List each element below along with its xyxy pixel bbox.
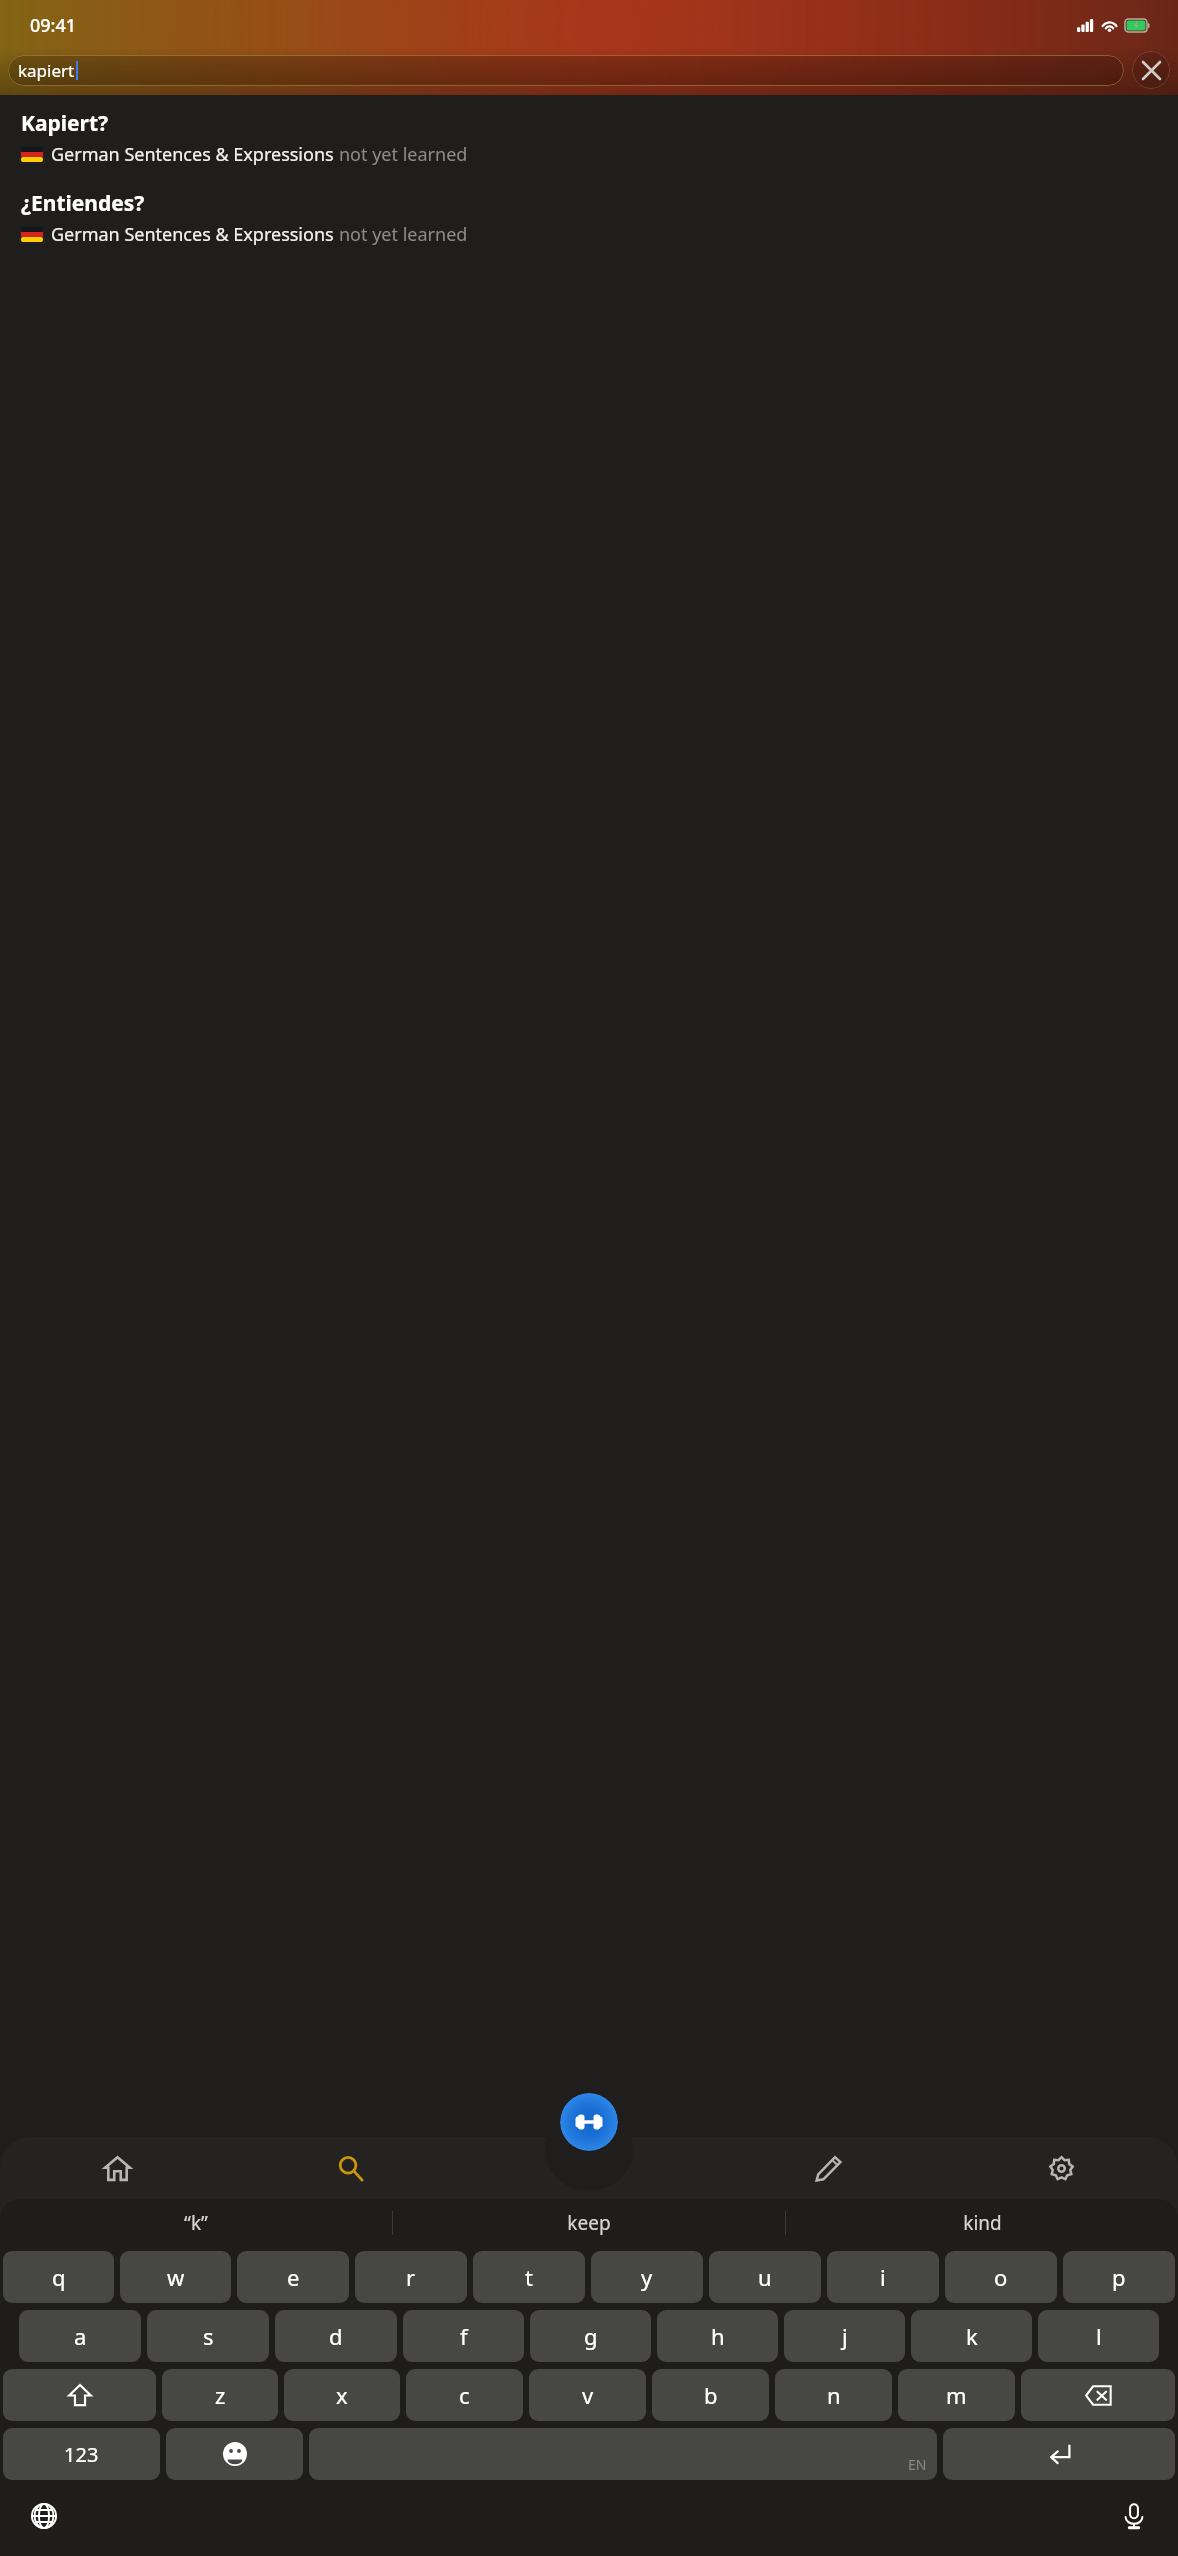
staticText: c [459,2380,470,2410]
staticText: p [1112,2262,1126,2292]
staticText: d [329,2321,343,2351]
staticText: v [582,2380,594,2410]
button[interactable]: 123 [3,2428,160,2480]
button[interactable]: Space [309,2428,937,2480]
button[interactable]: Shift [3,2369,156,2421]
staticText: t [525,2262,533,2292]
staticText: k [966,2321,978,2351]
staticText: e [287,2262,300,2292]
staticText: n [827,2380,841,2410]
staticText: 123 [64,2441,99,2468]
button[interactable]: Emoji [166,2428,303,2480]
staticText: not yet learned [339,222,468,247]
button[interactable]: a [19,2310,141,2362]
button[interactable]: g [530,2310,651,2362]
button[interactable]: x [284,2369,400,2421]
button[interactable]: Workout [560,2093,618,2151]
button[interactable]: Edit [712,2137,945,2199]
button[interactable]: k [911,2310,1032,2362]
staticText: kind [963,2210,1002,2236]
button[interactable]: kapiert [8,55,1124,86]
staticText: x [336,2380,348,2410]
button[interactable]: j [784,2310,905,2362]
staticText: not yet learned [339,142,468,167]
button[interactable]: kind [786,2199,1178,2247]
button[interactable]: s [147,2310,269,2362]
staticText: q [52,2262,66,2292]
button[interactable]: h [657,2310,778,2362]
button[interactable]: b [652,2369,769,2421]
button[interactable]: i [827,2251,939,2303]
button[interactable]: keep [393,2199,785,2247]
staticText: German Sentences & Expressions [51,222,339,247]
button[interactable]: f [403,2310,524,2362]
staticText: y [641,2262,653,2292]
button[interactable]: m [898,2369,1015,2421]
staticText: f [460,2321,468,2351]
staticText: a [74,2321,87,2351]
button[interactable]: Enter [943,2428,1175,2480]
staticText: u [758,2262,772,2292]
staticText: h [711,2321,725,2351]
button[interactable]: “k” [0,2199,392,2247]
button[interactable]: Backspace [1021,2369,1175,2421]
staticText: z [215,2380,226,2410]
staticText: kapiert [18,59,75,82]
staticText: keep [567,2210,611,2236]
staticText: l [1096,2321,1102,2351]
button[interactable]: Close search [1132,51,1170,89]
button[interactable]: l [1038,2310,1159,2362]
button[interactable]: v [529,2369,646,2421]
button[interactable]: w [120,2251,231,2303]
staticText: g [584,2321,598,2351]
button[interactable]: r [355,2251,467,2303]
staticText: 09:41 [30,13,77,38]
staticText: s [203,2321,214,2351]
button[interactable]: Settings [945,2137,1178,2199]
button[interactable]: y [591,2251,703,2303]
button[interactable]: q [3,2251,114,2303]
button[interactable]: e [237,2251,349,2303]
staticText: EN [908,2455,927,2474]
button[interactable]: Home [0,2137,234,2199]
staticText: o [994,2262,1008,2292]
button[interactable]: ¿Entiendes? [0,187,1178,249]
button[interactable]: n [775,2369,892,2421]
button[interactable]: u [709,2251,821,2303]
staticText: ¿Entiendes? [21,189,145,218]
staticText: j [842,2321,848,2351]
staticText: “k” [184,2210,208,2236]
staticText: German Sentences & Expressions [51,142,339,167]
button[interactable]: Change language [20,2492,68,2540]
staticText: r [406,2262,416,2292]
staticText: Kapiert? [21,109,109,138]
button[interactable]: z [162,2369,278,2421]
staticText: b [704,2380,718,2410]
staticText: w [167,2262,185,2292]
button[interactable]: o [945,2251,1057,2303]
button[interactable]: Kapiert? [0,107,1178,169]
staticText: m [946,2380,967,2410]
button[interactable]: p [1063,2251,1175,2303]
button[interactable]: Voice input [1110,2492,1158,2540]
button[interactable]: c [406,2369,523,2421]
button[interactable]: d [275,2310,397,2362]
staticText: i [880,2262,886,2292]
button[interactable]: Search [234,2137,467,2199]
button[interactable]: t [473,2251,585,2303]
